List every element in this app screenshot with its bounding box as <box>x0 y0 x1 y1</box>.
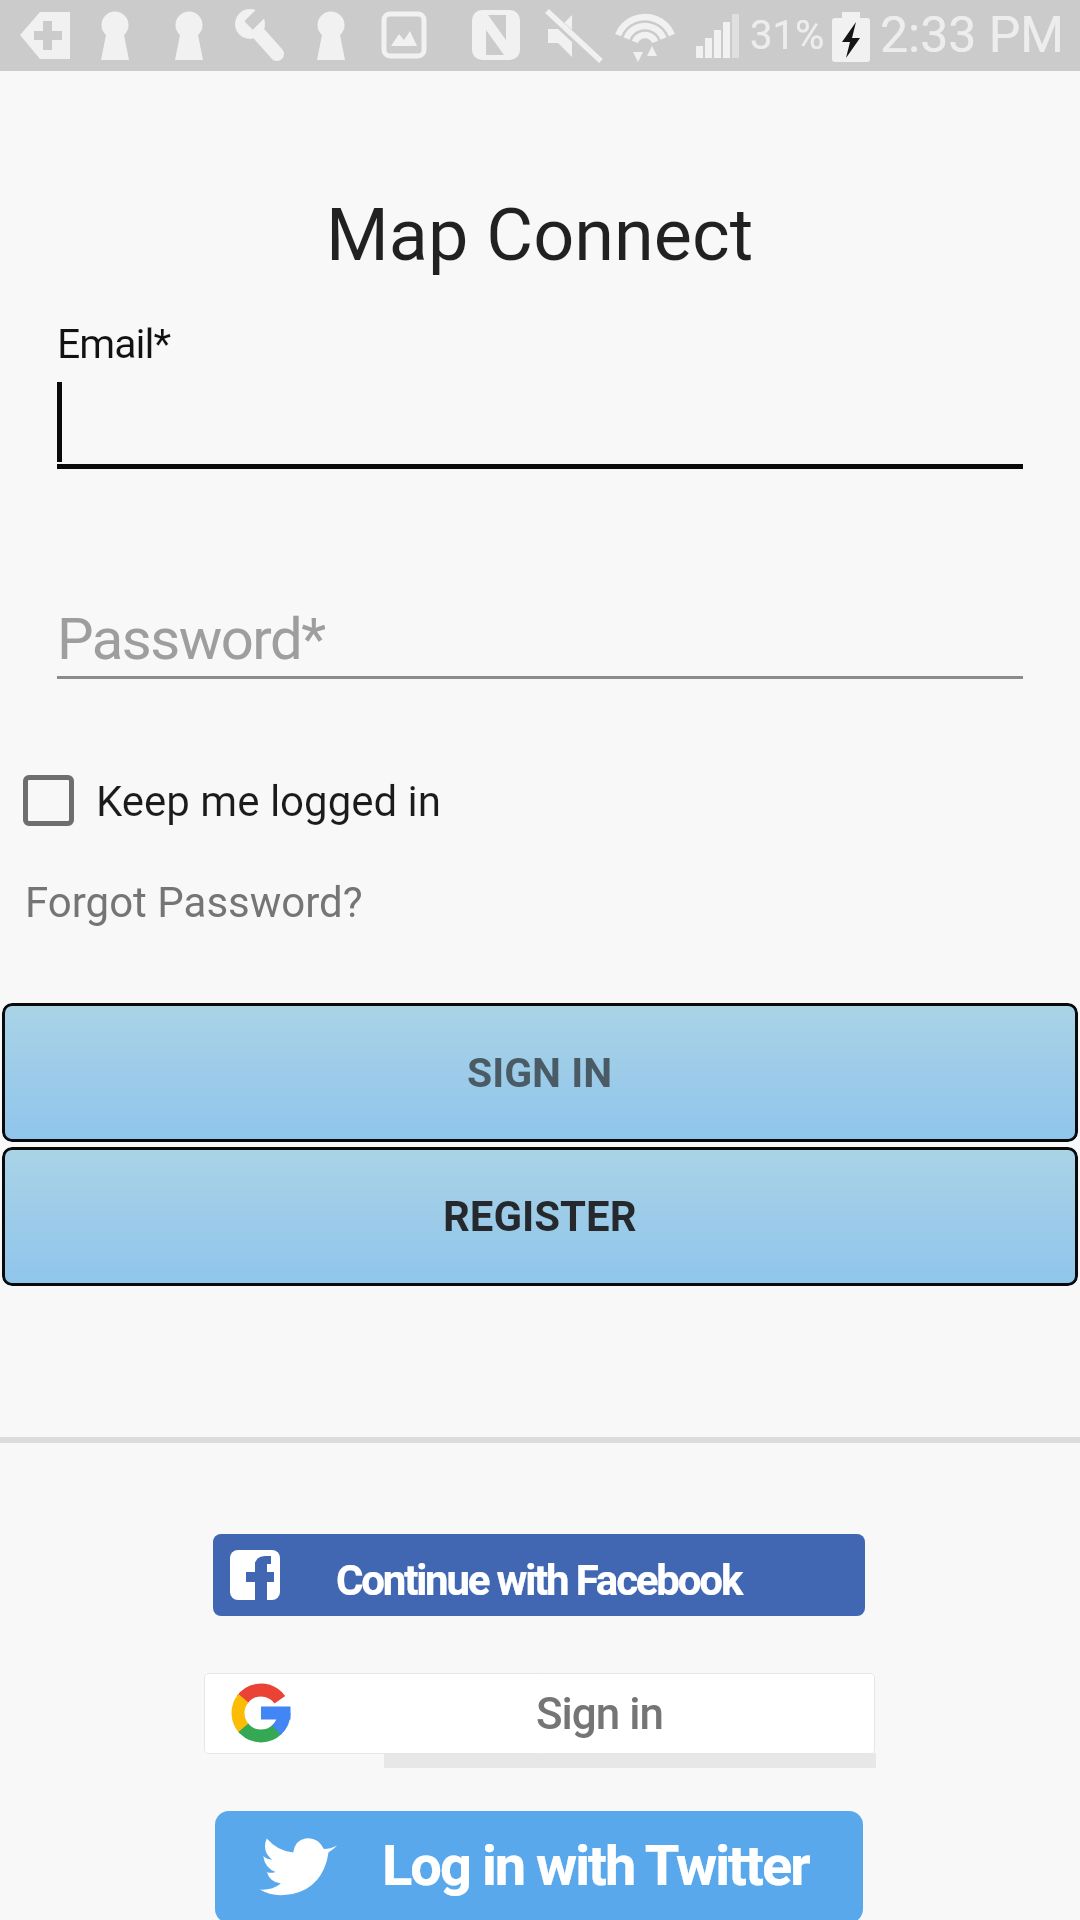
staticText: SIGN IN <box>467 1049 613 1097</box>
button[interactable]: Continue with Facebook <box>213 1534 865 1616</box>
button[interactable] <box>23 775 74 826</box>
staticText: REGISTER <box>443 1192 637 1241</box>
staticText: 2:33 PM <box>880 6 1065 65</box>
staticText: 31% <box>750 12 825 59</box>
staticText: Log in with Twitter <box>382 1833 809 1899</box>
staticText: Password* <box>57 605 325 665</box>
button[interactable]: Forgot Password? <box>25 872 363 932</box>
button[interactable]: Sign in <box>204 1673 875 1754</box>
staticText: Sign in <box>536 1688 663 1740</box>
staticText: Forgot Password? <box>25 878 363 927</box>
staticText: Keep me logged in <box>96 777 442 826</box>
button[interactable]: SIGN IN <box>2 1003 1078 1142</box>
staticText: Map Connect <box>326 193 754 277</box>
staticText: Continue with Facebook <box>336 1556 742 1605</box>
button[interactable]: Log in with Twitter <box>215 1811 863 1920</box>
button[interactable]: REGISTER <box>2 1147 1078 1286</box>
staticText: Email* <box>57 320 171 368</box>
